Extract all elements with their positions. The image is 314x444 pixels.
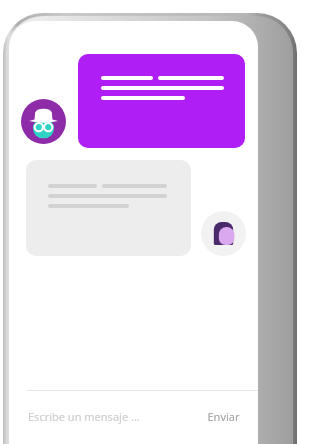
button[interactable]: Escribe un mensaje ... xyxy=(9,390,195,442)
staticText: Enviar xyxy=(207,409,240,424)
button[interactable] xyxy=(78,54,245,148)
button[interactable]: Enviar xyxy=(195,390,258,442)
button[interactable] xyxy=(26,160,191,256)
staticText: Escribe un mensaje ... xyxy=(28,409,140,424)
button[interactable]: Perfil de usuario xyxy=(201,211,246,256)
button[interactable]: Perfil anónimo xyxy=(21,99,66,144)
